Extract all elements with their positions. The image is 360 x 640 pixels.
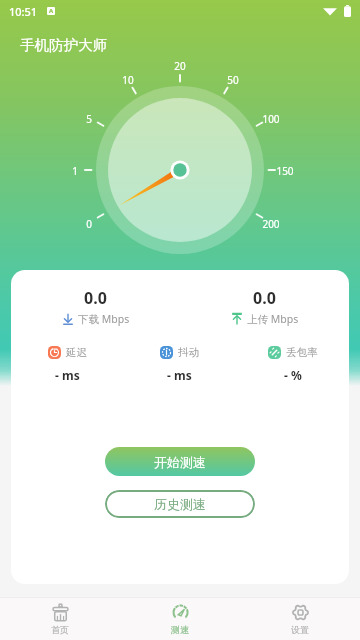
staticText: 上传 Mbps (247, 312, 299, 326)
staticText: 5 (74, 112, 104, 126)
staticText: 0.0 (253, 287, 276, 309)
staticText: 延迟 (66, 346, 87, 359)
button[interactable]: 设置 (240, 598, 360, 640)
staticText: 抖动 (178, 346, 199, 359)
staticText: 丢包率 (286, 346, 318, 359)
staticText: 100 (256, 112, 286, 126)
staticText: - % (284, 367, 302, 383)
staticText: 下载 Mbps (78, 312, 130, 326)
staticText: 1 (60, 164, 90, 178)
staticText: 0 (74, 217, 104, 231)
staticText: 200 (256, 217, 286, 231)
staticText: A (49, 7, 54, 15)
staticText: 历史测速 (154, 496, 206, 512)
staticText: 首页 (51, 624, 69, 635)
staticText: 50 (218, 73, 248, 87)
staticText: 开始测速 (154, 454, 206, 470)
button[interactable]: 测速 (120, 598, 240, 640)
button[interactable]: 首页 (0, 598, 120, 640)
staticText: 150 (270, 164, 300, 178)
staticText: 0.0 (84, 287, 107, 309)
button[interactable]: 历史测速 (105, 490, 255, 518)
button[interactable]: 开始测速 (105, 447, 255, 476)
staticText: 测速 (171, 624, 189, 635)
staticText: 10 (113, 73, 143, 87)
staticText: - ms (55, 367, 80, 383)
staticText: 设置 (291, 624, 309, 635)
staticText: 手机防护大师 (20, 36, 107, 54)
staticText: - ms (167, 367, 192, 383)
staticText: 20 (165, 59, 195, 73)
staticText: 10:51 (9, 4, 38, 19)
